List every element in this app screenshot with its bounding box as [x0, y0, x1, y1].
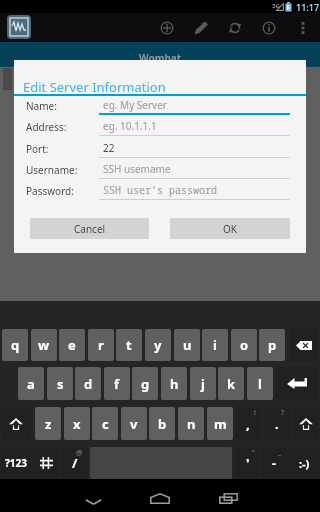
staticText: OK [223, 222, 237, 236]
button[interactable]: r [88, 329, 114, 361]
staticText: k [227, 375, 236, 393]
staticText: ? [281, 408, 285, 418]
staticText: / [72, 454, 78, 472]
button[interactable]: " [235, 447, 260, 479]
button[interactable]: App icon [7, 15, 31, 39]
button[interactable]: Enter [275, 367, 318, 400]
staticText: ?123 [5, 456, 27, 470]
staticText: Port: [26, 142, 49, 156]
button[interactable]: m [207, 407, 233, 440]
staticText: g [141, 375, 150, 393]
button[interactable]: a [18, 367, 44, 400]
staticText: q [11, 336, 20, 354]
staticText: e [68, 336, 76, 354]
staticText: - [272, 454, 277, 472]
button[interactable]: Shift [292, 407, 319, 440]
staticText: ' [246, 454, 250, 472]
staticText: Name: [26, 99, 57, 113]
button[interactable]: z [35, 407, 61, 440]
staticText: n [187, 415, 196, 433]
button[interactable]: Shift [1, 407, 31, 440]
button[interactable]: Info [253, 13, 285, 42]
staticText: eg. My Server [103, 98, 167, 112]
staticText: " [252, 448, 255, 458]
staticText: w [38, 336, 50, 354]
button[interactable]: More options [287, 13, 319, 42]
staticText: v [130, 415, 138, 433]
staticText: x [73, 415, 81, 433]
staticText: b [158, 415, 167, 433]
button[interactable]: j [190, 367, 216, 400]
button[interactable]: Home [135, 484, 185, 512]
staticText: y [154, 336, 162, 354]
button[interactable]: b [149, 407, 175, 440]
staticText: Wombat [139, 51, 182, 65]
staticText: SSH usemame [103, 162, 171, 176]
button[interactable]: o [231, 329, 257, 361]
staticText: s [57, 375, 64, 393]
button[interactable]: Back [68, 488, 118, 512]
button[interactable]: k [218, 367, 244, 400]
button[interactable]: @ [61, 447, 88, 479]
staticText: Address: [26, 120, 67, 134]
button[interactable]: p [259, 329, 285, 361]
button[interactable]: u [174, 329, 200, 361]
button[interactable]: t [116, 329, 142, 361]
button[interactable]: Refresh [219, 13, 251, 42]
staticText: , [246, 415, 250, 433]
button[interactable]: Edit [185, 13, 217, 42]
button[interactable]: q [2, 329, 28, 361]
staticText: ! [254, 408, 256, 418]
button[interactable]: i [202, 329, 228, 361]
button[interactable]: c [92, 407, 118, 440]
button[interactable]: ! [235, 407, 261, 440]
staticText: z [45, 415, 52, 433]
button[interactable]: OK [170, 218, 290, 239]
button[interactable]: f [104, 367, 130, 400]
button[interactable]: Add [151, 13, 183, 42]
staticText: eg. 10.1.1.1 [103, 119, 157, 133]
staticText: Password: [26, 184, 74, 198]
button[interactable]: Backspace [290, 329, 318, 361]
button[interactable]: y [145, 329, 171, 361]
staticText: 11:17 [296, 1, 320, 13]
staticText: j [201, 375, 205, 393]
button[interactable]: g [132, 367, 158, 400]
staticText: h [170, 375, 179, 393]
button[interactable]: ?123 [1, 447, 31, 479]
button[interactable]: _ [262, 447, 287, 479]
button[interactable]: Recent apps [203, 484, 253, 512]
staticText: f [114, 375, 120, 393]
button[interactable]: h [161, 367, 187, 400]
button[interactable]: w [31, 329, 57, 361]
button[interactable]: l [247, 367, 273, 400]
button[interactable]: ? [264, 407, 290, 440]
staticText: Edit Server Information [23, 78, 166, 96]
button[interactable]: Cancel [30, 218, 149, 239]
button[interactable]: :-) [289, 447, 319, 479]
staticText: a [27, 375, 35, 393]
button[interactable]: x [64, 407, 90, 440]
staticText: SSH user's password [103, 183, 217, 197]
staticText: 22 [103, 141, 115, 155]
staticText: Cancel [74, 222, 106, 236]
staticText: c [102, 415, 109, 433]
staticText: @ [76, 448, 83, 458]
staticText: :-) [299, 456, 310, 471]
staticText: u [183, 336, 192, 354]
staticText: r [98, 336, 104, 354]
staticText: p [268, 336, 277, 354]
staticText: i [213, 336, 217, 354]
staticText: Username: [26, 163, 78, 177]
staticText: t [126, 336, 132, 354]
button[interactable]: s [47, 367, 73, 400]
staticText: l [258, 375, 262, 393]
button[interactable]: v [121, 407, 147, 440]
button[interactable]: d [75, 367, 101, 400]
button[interactable]: Keyboard settings [33, 447, 59, 479]
staticText: _ [278, 448, 282, 458]
button[interactable]: n [178, 407, 204, 440]
staticText: o [240, 336, 249, 354]
button[interactable]: e [59, 329, 85, 361]
